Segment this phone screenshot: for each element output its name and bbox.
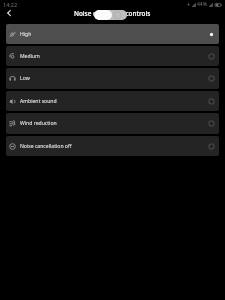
button[interactable]: Ambient sound xyxy=(6,91,219,111)
staticText: Noise cancellation off xyxy=(20,143,72,150)
button[interactable]: Wind reduction xyxy=(6,113,219,134)
staticText: 44% xyxy=(197,1,207,8)
button[interactable]: Medium xyxy=(6,46,219,66)
staticText: High xyxy=(20,31,32,38)
staticText: Noise cancelling controls xyxy=(74,9,151,18)
button[interactable]: Toggle xyxy=(94,10,127,20)
button[interactable]: Back xyxy=(2,6,15,19)
button[interactable]: Low xyxy=(6,68,219,89)
button[interactable]: Noise cancellation off xyxy=(6,136,219,156)
staticText: Medium xyxy=(20,53,40,60)
staticText: Ambient sound xyxy=(20,98,57,105)
staticText: Low xyxy=(20,75,30,82)
staticText: 14:22 xyxy=(3,1,18,8)
staticText: Wind reduction xyxy=(20,120,57,127)
button[interactable]: High xyxy=(6,24,219,44)
